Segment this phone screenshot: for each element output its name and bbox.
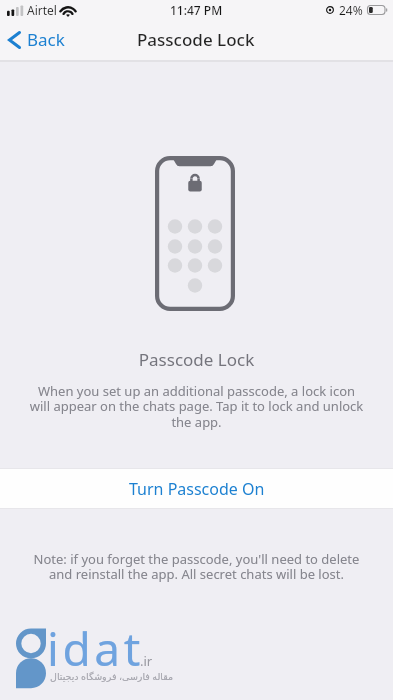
staticText: Back	[27, 28, 65, 51]
button[interactable]: Back	[0, 23, 75, 56]
staticText: Turn Passcode On	[129, 478, 265, 500]
staticText: idat	[47, 617, 144, 680]
staticText: مقاله فارسی، فروشگاه دیجیتال	[50, 670, 174, 683]
staticText: 24%	[339, 2, 363, 18]
staticText: Passcode Lock	[0, 348, 393, 371]
staticText: Passcode Lock	[137, 28, 255, 51]
staticText: When you set up an additional passcode, …	[27, 382, 366, 431]
staticText: 11:47 PM	[170, 2, 223, 18]
button[interactable]: Turn Passcode On	[0, 469, 393, 508]
staticText: Note: if you forget the passcode, you'll…	[27, 550, 366, 583]
staticText: .ir	[140, 652, 153, 670]
staticText: Airtel	[27, 2, 57, 18]
